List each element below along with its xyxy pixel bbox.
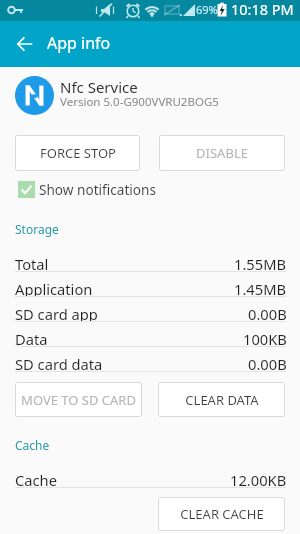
- staticText: Cache: [15, 437, 50, 453]
- staticText: FORCE STOP: [40, 144, 116, 162]
- staticText: Nfc Service: [60, 77, 138, 97]
- staticText: MOVE TO SD CARD: [21, 391, 136, 409]
- staticText: 12.00KB: [230, 470, 287, 488]
- staticText: DISABLE: [196, 144, 248, 162]
- button[interactable]: CLEAR DATA: [158, 382, 285, 417]
- staticText: Storage: [15, 221, 59, 237]
- staticText: Show notifications: [39, 180, 156, 199]
- button[interactable]: Cache: [0, 463, 300, 488]
- button[interactable]: Show notifications: [15, 178, 190, 201]
- button[interactable]: Data: [0, 322, 300, 347]
- staticText: CLEAR CACHE: [180, 505, 264, 523]
- staticText: Version 5.0-G900VVRU2BOG5: [60, 94, 219, 110]
- button[interactable]: DISABLE: [159, 135, 285, 171]
- staticText: CLEAR DATA: [185, 391, 259, 409]
- button[interactable]: MOVE TO SD CARD: [15, 382, 142, 417]
- staticText: 0.00B: [248, 304, 287, 322]
- staticText: Data: [15, 329, 48, 347]
- staticText: App info: [47, 32, 111, 54]
- button[interactable]: Back: [0, 21, 48, 67]
- staticText: SD card app: [15, 304, 98, 322]
- staticText: 1.55MB: [234, 254, 287, 272]
- staticText: SD card data: [15, 354, 103, 372]
- button[interactable]: SD card data: [0, 347, 300, 372]
- staticText: Application: [15, 279, 93, 297]
- staticText: 69%: [196, 2, 218, 17]
- button[interactable]: SD card app: [0, 297, 300, 322]
- staticText: 0.00B: [248, 354, 287, 372]
- staticText: 10:18 PM: [231, 0, 294, 19]
- staticText: 100KB: [243, 329, 287, 347]
- button[interactable]: Application: [0, 272, 300, 297]
- staticText: Total: [15, 254, 49, 272]
- staticText: 1.45MB: [234, 279, 287, 297]
- button[interactable]: Total: [0, 247, 300, 272]
- staticText: Cache: [15, 470, 57, 488]
- button[interactable]: FORCE STOP: [15, 135, 140, 171]
- button[interactable]: CLEAR CACHE: [158, 497, 285, 531]
